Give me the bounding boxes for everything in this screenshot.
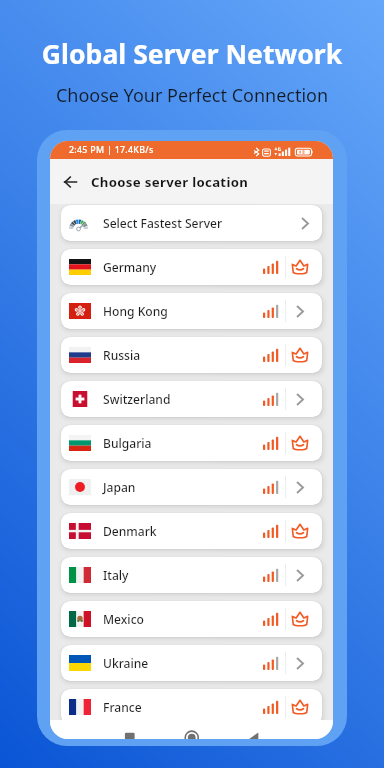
staticText: Choose server location (91, 173, 249, 191)
button[interactable]: Ukraine (61, 645, 322, 681)
button[interactable]: Russia (61, 337, 322, 373)
button[interactable]: Italy (61, 557, 322, 593)
button[interactable]: Switzerland (61, 381, 322, 417)
staticText: Bulgaria (103, 435, 152, 451)
staticText: Hong Kong (103, 303, 168, 319)
staticText: Germany (103, 259, 157, 275)
staticText: Choose Your Perfect Connection (0, 83, 384, 108)
staticText: Global Server Network (0, 36, 384, 72)
staticText: Mexico (103, 611, 144, 627)
staticText: Ukraine (103, 655, 149, 671)
staticText: Japan (103, 479, 136, 495)
button[interactable]: Back (62, 172, 82, 192)
staticText: 2:45 PM | 17.4KB/s (69, 144, 154, 156)
staticText: Switzerland (103, 391, 171, 407)
staticText: Russia (103, 347, 141, 363)
staticText: Select Fastest Server (103, 215, 223, 231)
button[interactable]: Hong Kong (61, 293, 322, 329)
staticText: Denmark (103, 523, 157, 539)
button[interactable]: Japan (61, 469, 322, 505)
button[interactable]: Select Fastest Server (61, 205, 322, 241)
staticText: France (103, 699, 142, 715)
button[interactable]: Bulgaria (61, 425, 322, 461)
button[interactable]: France (61, 689, 322, 725)
staticText: Italy (103, 567, 129, 583)
button[interactable]: Mexico (61, 601, 322, 637)
button[interactable]: Germany (61, 249, 322, 285)
button[interactable]: Denmark (61, 513, 322, 549)
